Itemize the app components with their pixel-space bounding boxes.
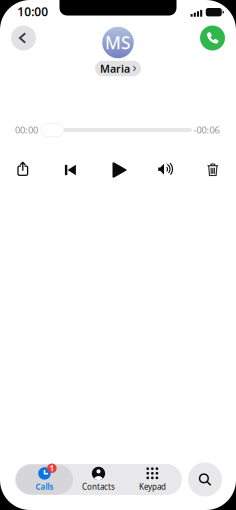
- button[interactable]: Maria: [95, 61, 141, 76]
- button[interactable]: Keypad: [126, 464, 179, 494]
- button[interactable]: 1: [16, 464, 73, 494]
- staticText: Keypad: [139, 481, 166, 492]
- button[interactable]: Rewind: [55, 157, 85, 183]
- button[interactable]: Delete: [198, 157, 228, 183]
- button[interactable]: Contacts: [72, 464, 125, 494]
- button[interactable]: Search: [188, 462, 222, 496]
- button[interactable]: Back: [11, 25, 36, 50]
- button[interactable]: Call: [200, 25, 225, 50]
- staticText: 00:00: [15, 124, 38, 136]
- staticText: Contacts: [82, 481, 115, 492]
- button[interactable]: Speaker: [151, 156, 181, 182]
- staticText: Calls: [35, 481, 53, 492]
- staticText: -00:06: [193, 124, 219, 136]
- button[interactable]: Share: [8, 156, 38, 182]
- staticText: 10:00: [17, 4, 48, 19]
- staticText: MS: [105, 31, 131, 54]
- staticText: Maria: [100, 61, 130, 76]
- button[interactable]: Play: [105, 157, 135, 183]
- staticText: 1: [49, 463, 54, 473]
